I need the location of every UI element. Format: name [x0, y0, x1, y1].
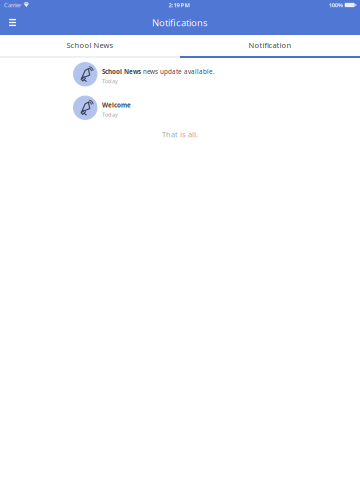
staticText: Today	[102, 111, 118, 118]
staticText: Carrier	[4, 1, 21, 9]
staticText: Today	[102, 77, 118, 85]
staticText: Welcome	[102, 101, 131, 109]
staticText: 100%	[329, 1, 343, 9]
staticText: That is all.	[162, 129, 198, 139]
button[interactable]: Notification	[180, 35, 360, 55]
button[interactable]: School News	[0, 35, 180, 55]
staticText: 2:19 PM	[169, 1, 190, 9]
staticText: School News news update available.	[102, 67, 215, 76]
button[interactable]: Welcome	[73, 95, 287, 129]
staticText: Notification	[248, 40, 291, 50]
staticText: School News	[66, 40, 113, 50]
button[interactable]: Menu	[0, 10, 25, 35]
staticText: Notifications	[152, 16, 208, 29]
button[interactable]: School News news update available.	[73, 62, 287, 95]
